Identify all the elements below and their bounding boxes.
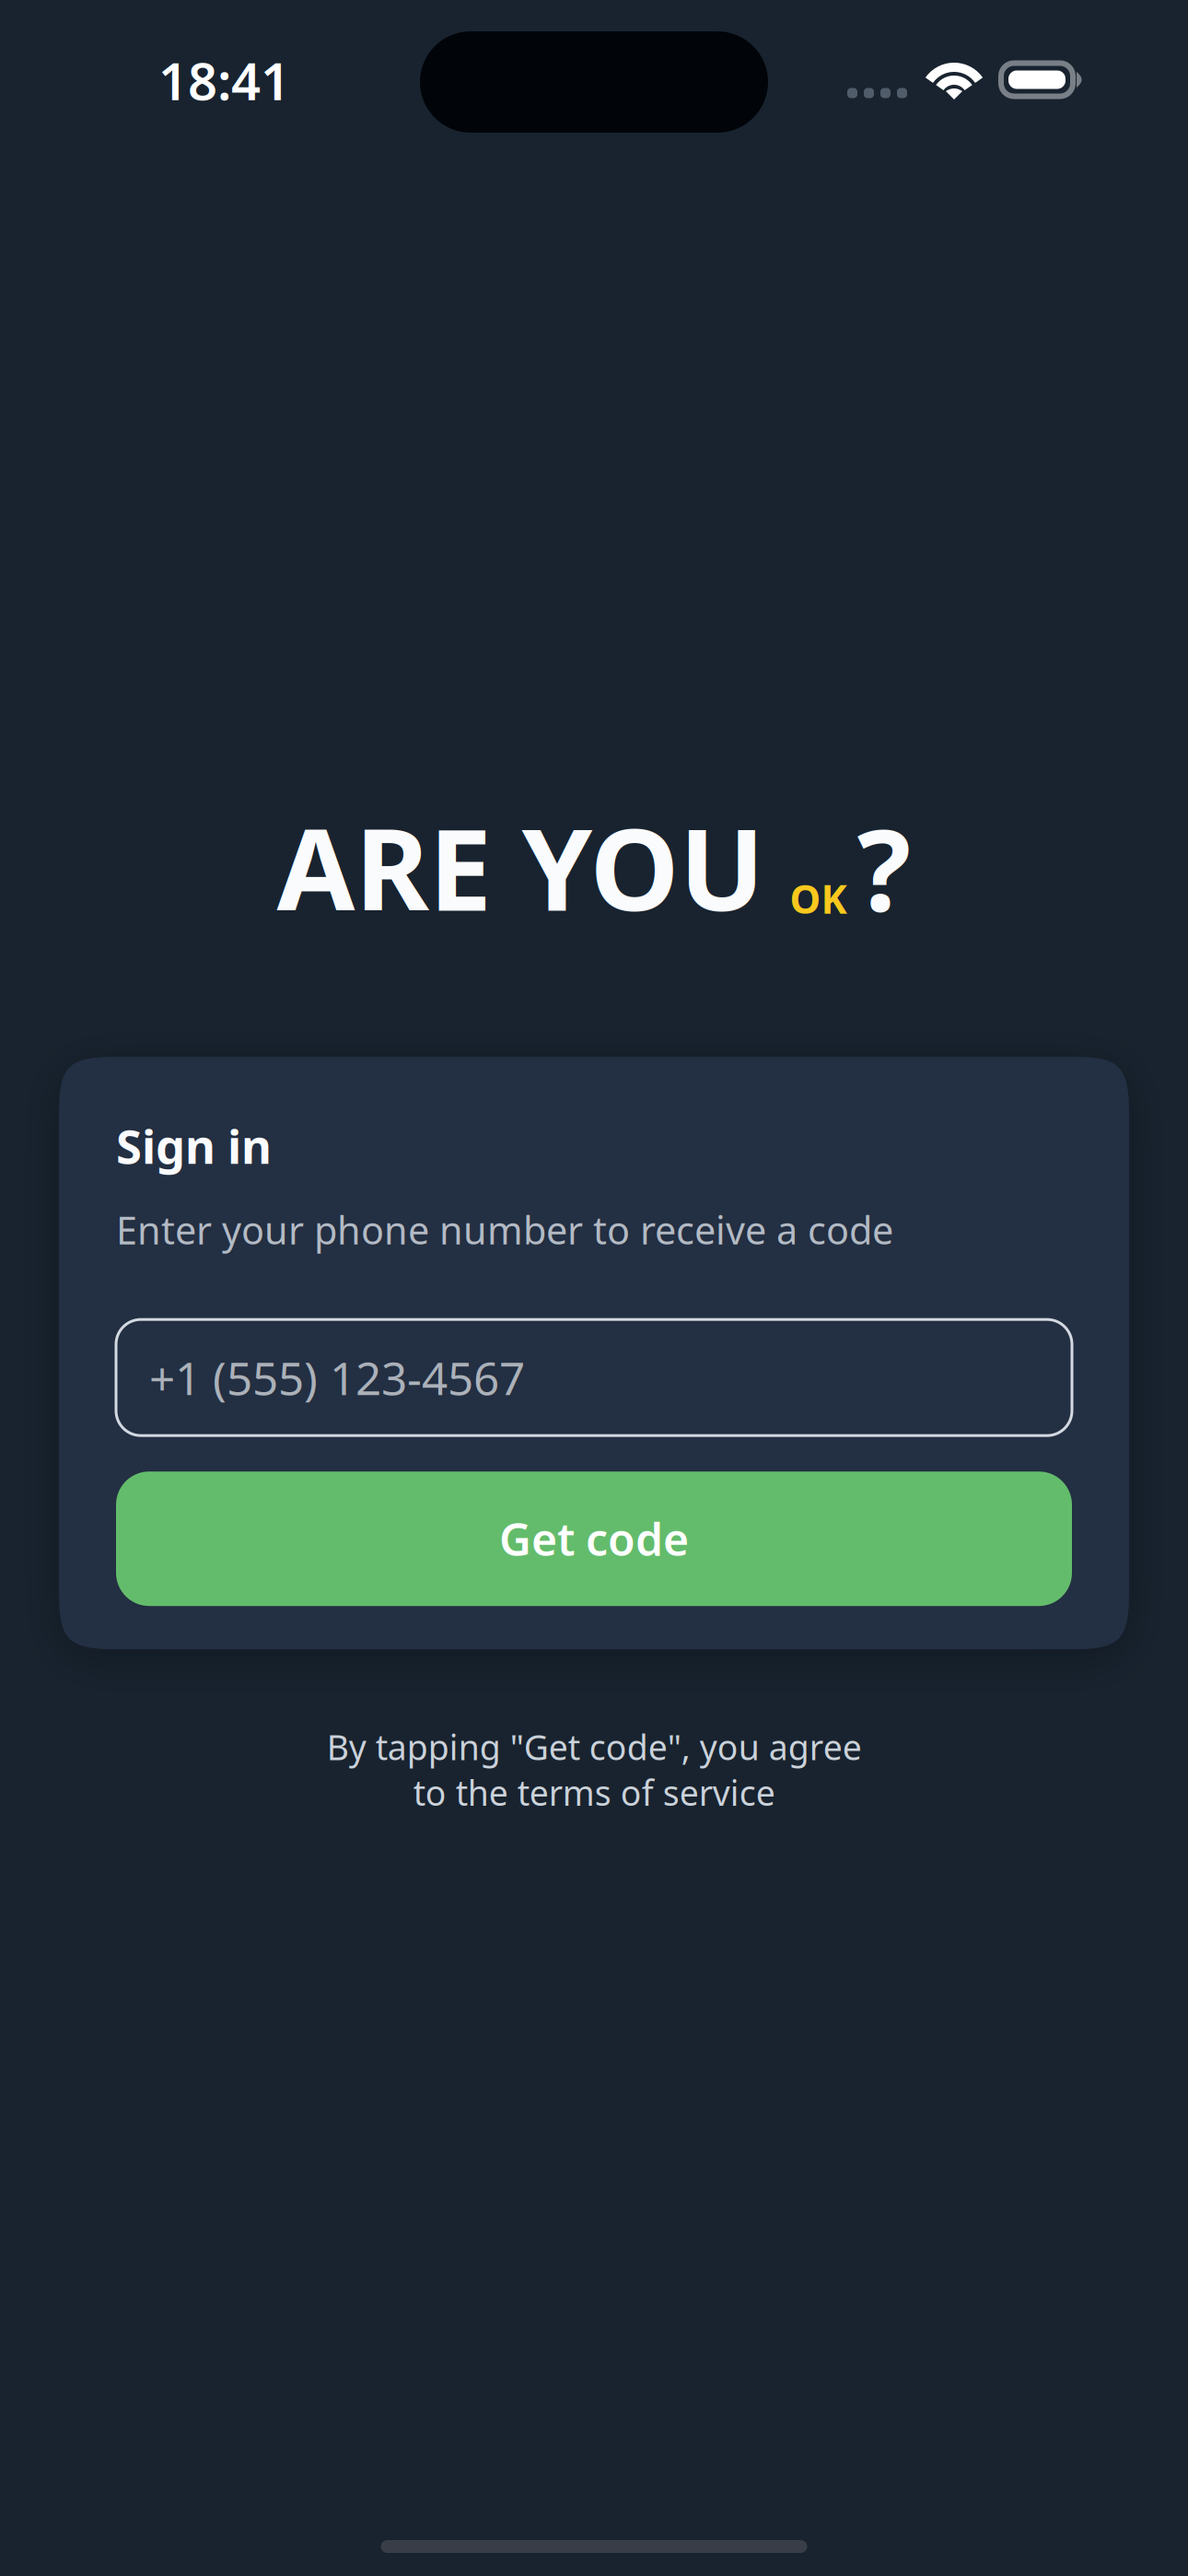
staticText: By tapping "Get code", you agree to the … [326, 1724, 862, 1815]
staticText: 18:41 [158, 46, 290, 114]
staticText: ARE YOU [277, 792, 765, 942]
staticText: Enter your phone number to receive a cod… [116, 1204, 893, 1255]
button[interactable]: Get code [116, 1472, 1072, 1606]
button[interactable]: Phone number [116, 1320, 1072, 1436]
staticText: ? [857, 792, 911, 942]
staticText: OK [790, 872, 847, 925]
staticText: Sign in [116, 1115, 272, 1177]
staticText: +1 (555) 123-4567 [149, 1347, 525, 1408]
staticText: Get code [499, 1509, 689, 1568]
